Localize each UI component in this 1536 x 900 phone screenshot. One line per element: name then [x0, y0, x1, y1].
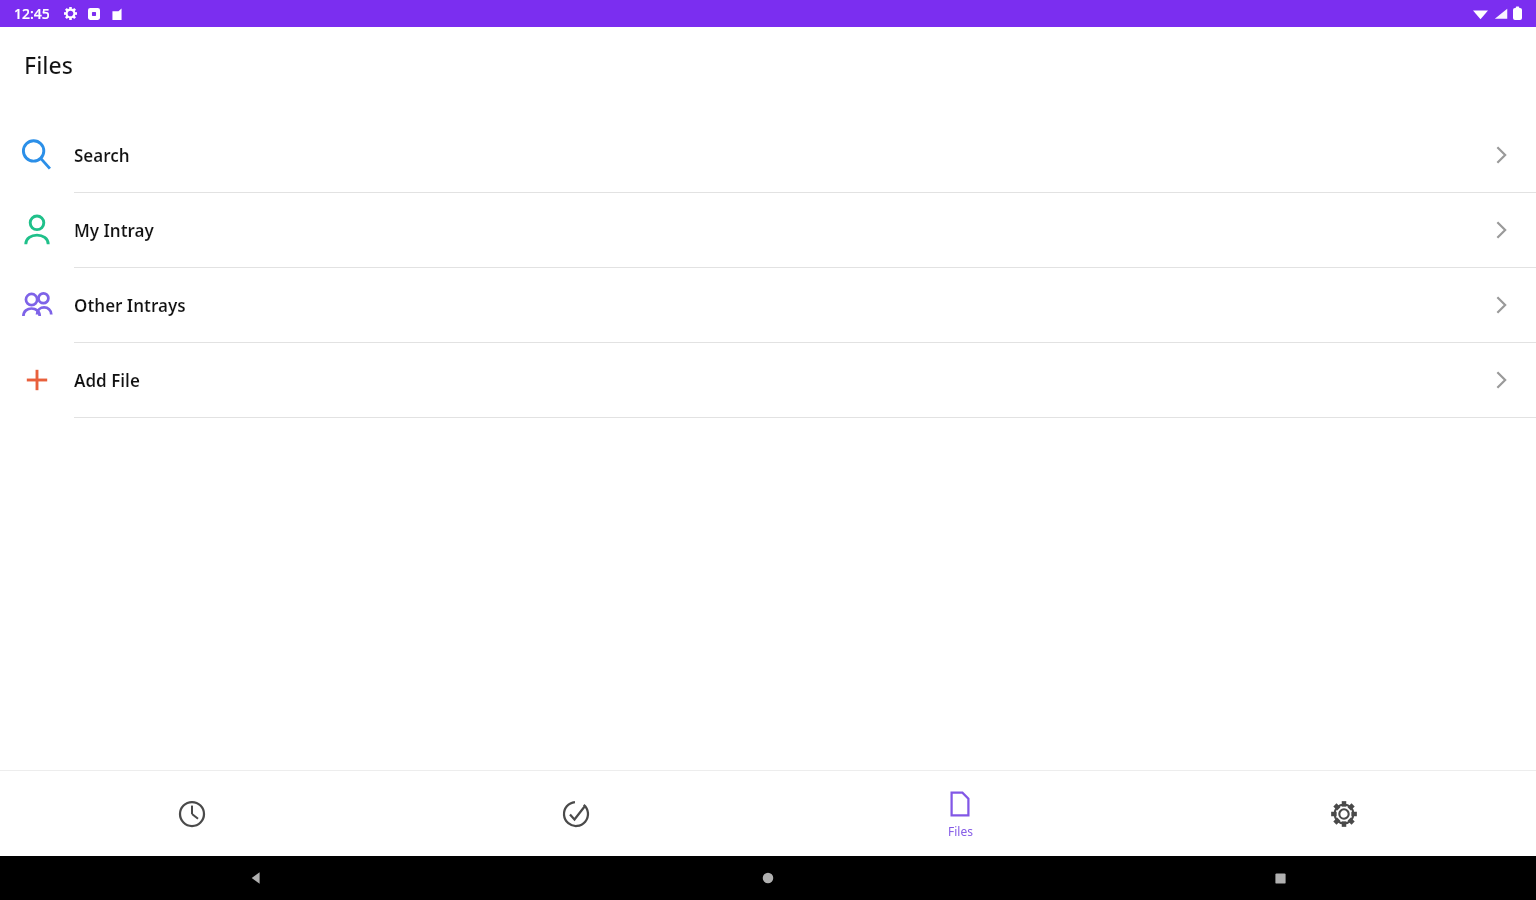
other: Back: [247, 869, 265, 887]
button[interactable]: Add File: [0, 343, 1536, 418]
staticText: Search: [74, 144, 1488, 167]
button[interactable]: Tasks: [384, 771, 768, 856]
button[interactable]: Files: [768, 771, 1152, 856]
other: Home: [760, 870, 776, 886]
button[interactable]: Settings: [1152, 771, 1536, 856]
staticText: Other Intrays: [74, 294, 1488, 317]
button[interactable]: Search: [0, 118, 1536, 193]
button[interactable]: Recent: [0, 771, 384, 856]
staticText: Files: [948, 823, 973, 839]
other: Recents: [1273, 871, 1288, 886]
button[interactable]: My Intray: [0, 193, 1536, 268]
staticText: Files: [24, 49, 73, 80]
staticText: 12:45: [14, 4, 50, 23]
staticText: Add File: [74, 369, 1488, 392]
button[interactable]: Other Intrays: [0, 268, 1536, 343]
staticText: My Intray: [74, 219, 1488, 242]
